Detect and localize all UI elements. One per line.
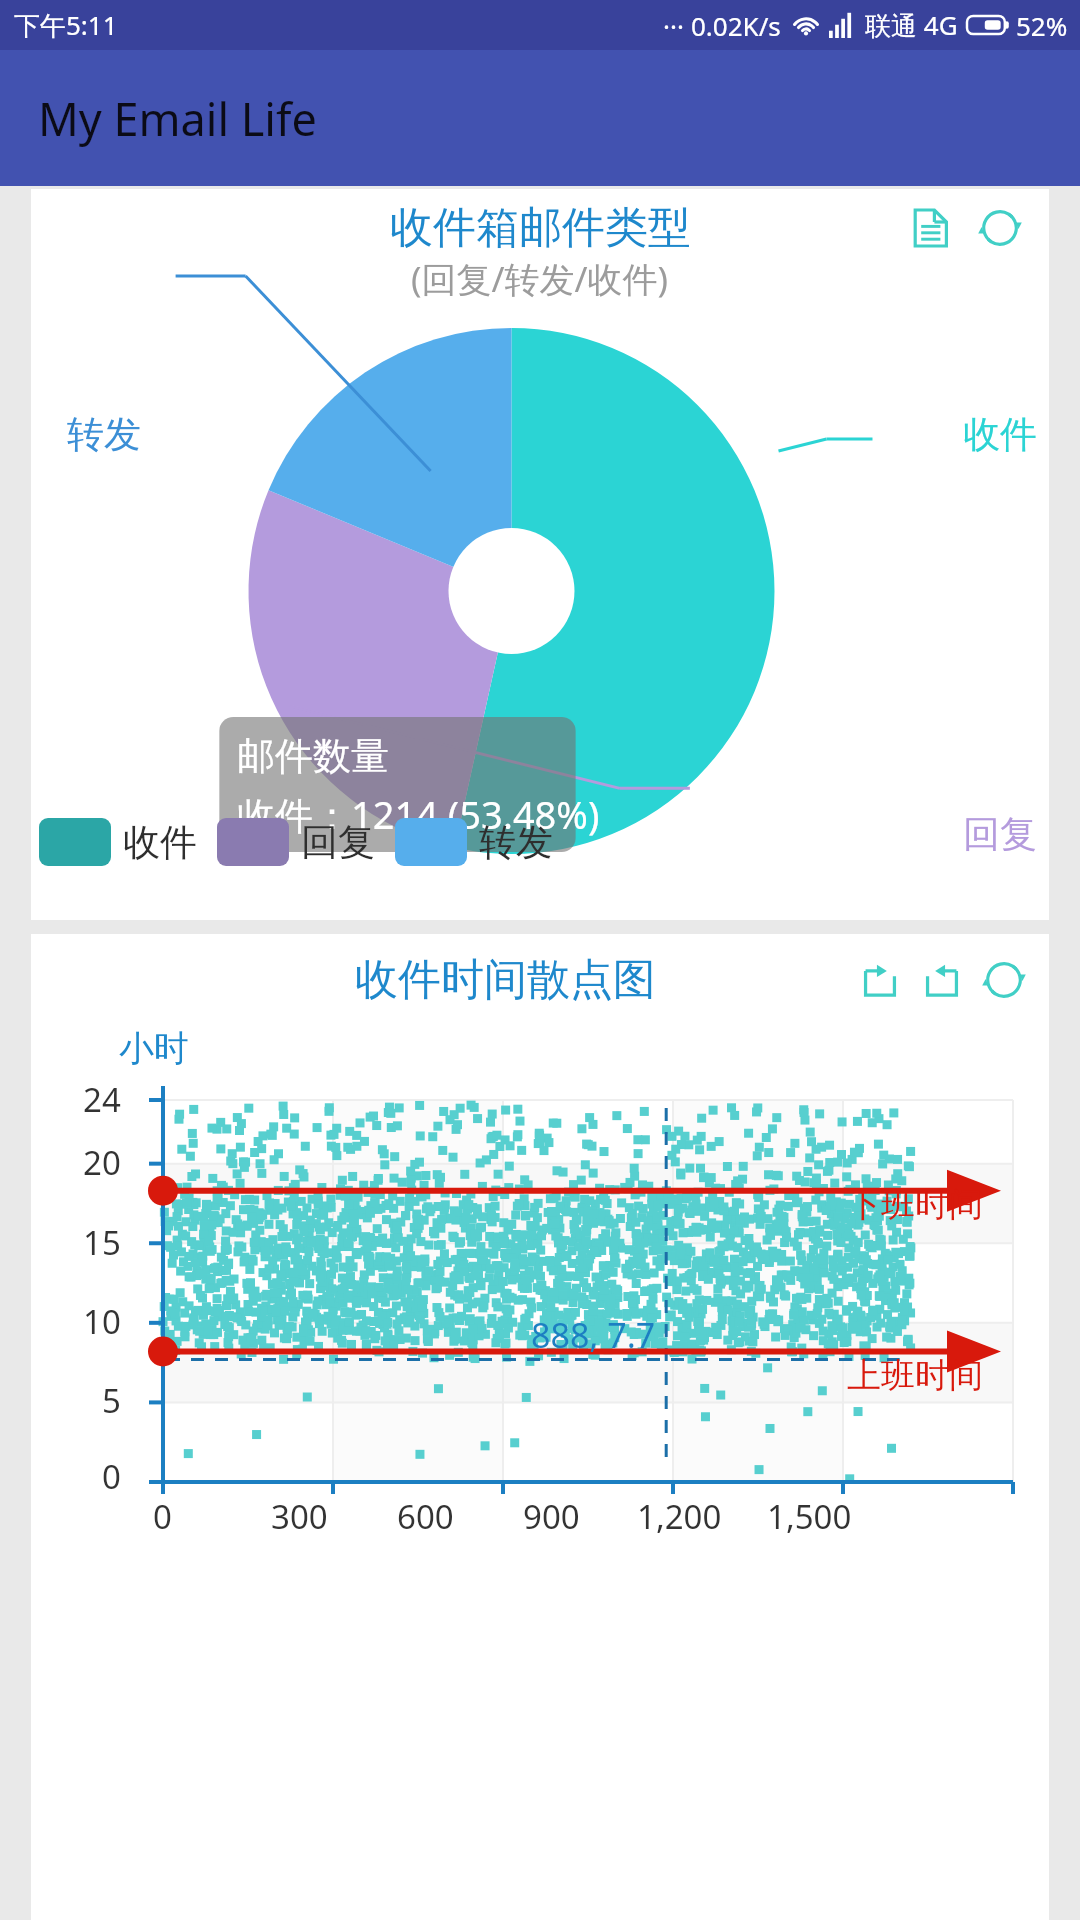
staticText: 收件 (963, 411, 1037, 458)
staticText: 小时 (119, 1026, 189, 1070)
staticText: 52% (1016, 8, 1068, 43)
staticText: 300 (271, 1494, 328, 1539)
staticText: 转发 (67, 411, 141, 458)
staticText: 10 (83, 1299, 121, 1344)
staticText: 15 (83, 1220, 121, 1265)
staticText: 24 (83, 1077, 121, 1122)
staticText: 上班时间 (847, 1354, 983, 1397)
staticText: 下午5:11 (14, 7, 118, 43)
staticText: 0 (153, 1494, 172, 1539)
staticText: 5 (102, 1378, 121, 1423)
staticText: 收件：1214 (53.48%) (237, 788, 600, 840)
button[interactable]: 回复 (217, 818, 375, 866)
staticText: (回复/转发/收件) (411, 255, 669, 303)
staticText: 回复 (301, 819, 375, 866)
staticText: 888, 7.7 (531, 1312, 656, 1358)
staticText: 0 (102, 1454, 121, 1499)
button[interactable]: Export data (901, 199, 959, 257)
staticText: My Email Life (38, 88, 317, 149)
staticText: 回复 (963, 811, 1037, 858)
staticText: 收件时间散点图 (355, 953, 656, 1007)
staticText: 下班时间 (847, 1183, 983, 1226)
button[interactable]: 转发 (395, 818, 553, 866)
button[interactable] (31, 934, 1049, 1920)
button[interactable]: Zoom in (853, 953, 907, 1007)
staticText: 联通 4G (865, 7, 958, 43)
button[interactable]: 收件 (39, 818, 197, 866)
staticText: 600 (397, 1494, 454, 1539)
button[interactable] (31, 189, 1049, 920)
staticText: 收件箱邮件类型 (390, 201, 691, 255)
button[interactable]: Refresh scatter (977, 953, 1031, 1007)
staticText: 转发 (479, 819, 553, 866)
button[interactable]: Zoom out (915, 953, 969, 1007)
button[interactable]: Refresh chart (971, 199, 1029, 257)
staticText: 收件 (123, 819, 197, 866)
staticText: 20 (83, 1140, 121, 1185)
staticText: ··· (663, 8, 684, 43)
staticText: 1,200 (637, 1494, 722, 1539)
staticText: 1,500 (767, 1494, 852, 1539)
staticText: 900 (523, 1494, 580, 1539)
staticText: 0.02K/s (691, 8, 781, 43)
staticText: 邮件数量 (237, 732, 389, 780)
